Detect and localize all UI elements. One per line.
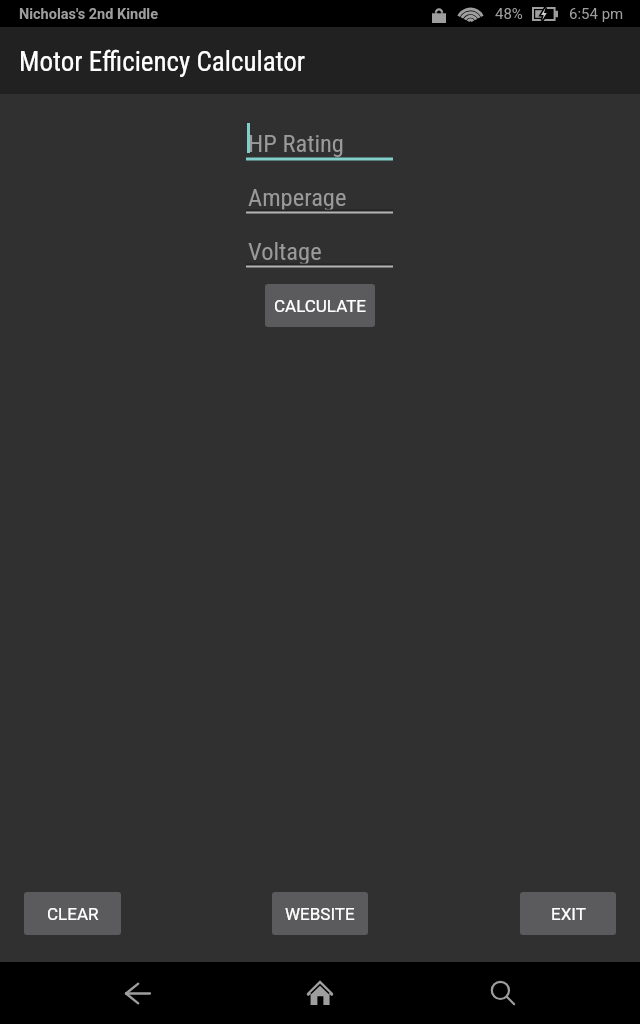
button[interactable]: HP Rating bbox=[246, 116, 393, 160]
button[interactable]: CALCULATE bbox=[265, 284, 375, 327]
staticText: 6:54 pm bbox=[569, 5, 624, 23]
staticText: 48% bbox=[495, 5, 523, 23]
button[interactable]: Voltage bbox=[246, 224, 393, 268]
button[interactable]: CLEAR bbox=[24, 892, 121, 935]
staticText: WEBSITE bbox=[285, 904, 355, 924]
button[interactable]: Home bbox=[288, 962, 352, 1024]
button[interactable]: Amperage bbox=[246, 170, 393, 214]
staticText: CLEAR bbox=[47, 904, 99, 924]
button[interactable]: EXIT bbox=[520, 892, 616, 935]
staticText: Motor Efficiency Calculator bbox=[19, 46, 306, 78]
staticText: CALCULATE bbox=[274, 296, 366, 316]
staticText: Amperage bbox=[248, 183, 347, 212]
staticText: HP Rating bbox=[248, 129, 344, 158]
button[interactable]: Back bbox=[105, 962, 169, 1024]
staticText: Voltage bbox=[248, 237, 322, 266]
staticText: Nicholas's 2nd Kindle bbox=[19, 6, 158, 23]
button[interactable]: WEBSITE bbox=[272, 892, 368, 935]
button[interactable]: Search bbox=[471, 962, 535, 1024]
staticText: EXIT bbox=[551, 904, 586, 924]
